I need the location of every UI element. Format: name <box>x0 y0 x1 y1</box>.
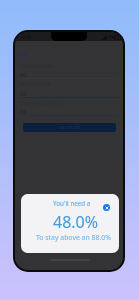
staticText: To stay above an 88.0% <box>36 233 111 242</box>
staticText: CALCULATE <box>58 125 81 130</box>
staticText: 80 <box>20 71 27 78</box>
staticText: 48.0% <box>53 211 99 233</box>
button[interactable]: Settings <box>19 51 27 59</box>
staticText: 9:41 <box>22 34 32 41</box>
staticText: You'll need a <box>53 199 91 207</box>
staticText: 88 <box>20 108 27 115</box>
staticText: 20 <box>20 90 27 97</box>
button[interactable]: Close <box>103 204 110 211</box>
